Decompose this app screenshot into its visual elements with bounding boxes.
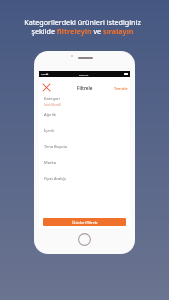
button[interactable]: Close: [41, 82, 52, 93]
button[interactable]: Tena Boyutu: [39, 143, 130, 159]
button[interactable]: Fiyat Aralığı: [39, 175, 130, 191]
staticText: Carrier: [41, 73, 49, 76]
staticText: Ürünleri Filtrele: [72, 220, 98, 225]
staticText: Islak Mendil: [44, 103, 61, 107]
button[interactable]: Temizle: [114, 86, 128, 91]
staticText: Kategorilerdeki ürünleri istediginiz şek…: [24, 17, 141, 36]
button[interactable]: Kategori: [39, 95, 130, 111]
staticText: 2:56 PM: [79, 73, 89, 76]
staticText: Kategori: [44, 96, 60, 101]
staticText: İçerik: [44, 128, 55, 133]
staticText: Filtrele: [77, 85, 93, 91]
button[interactable]: Ürünleri Filtrele: [43, 218, 126, 226]
staticText: Tena Boyutu: [44, 144, 68, 149]
staticText: Temizle: [114, 86, 128, 91]
button[interactable]: Marka: [39, 159, 130, 175]
staticText: Marka: [44, 160, 56, 165]
staticText: Ağırlık: [44, 112, 56, 117]
button[interactable]: İçerik: [39, 127, 130, 143]
button[interactable]: Ağırlık: [39, 111, 130, 127]
staticText: Fiyat Aralığı: [44, 176, 66, 181]
